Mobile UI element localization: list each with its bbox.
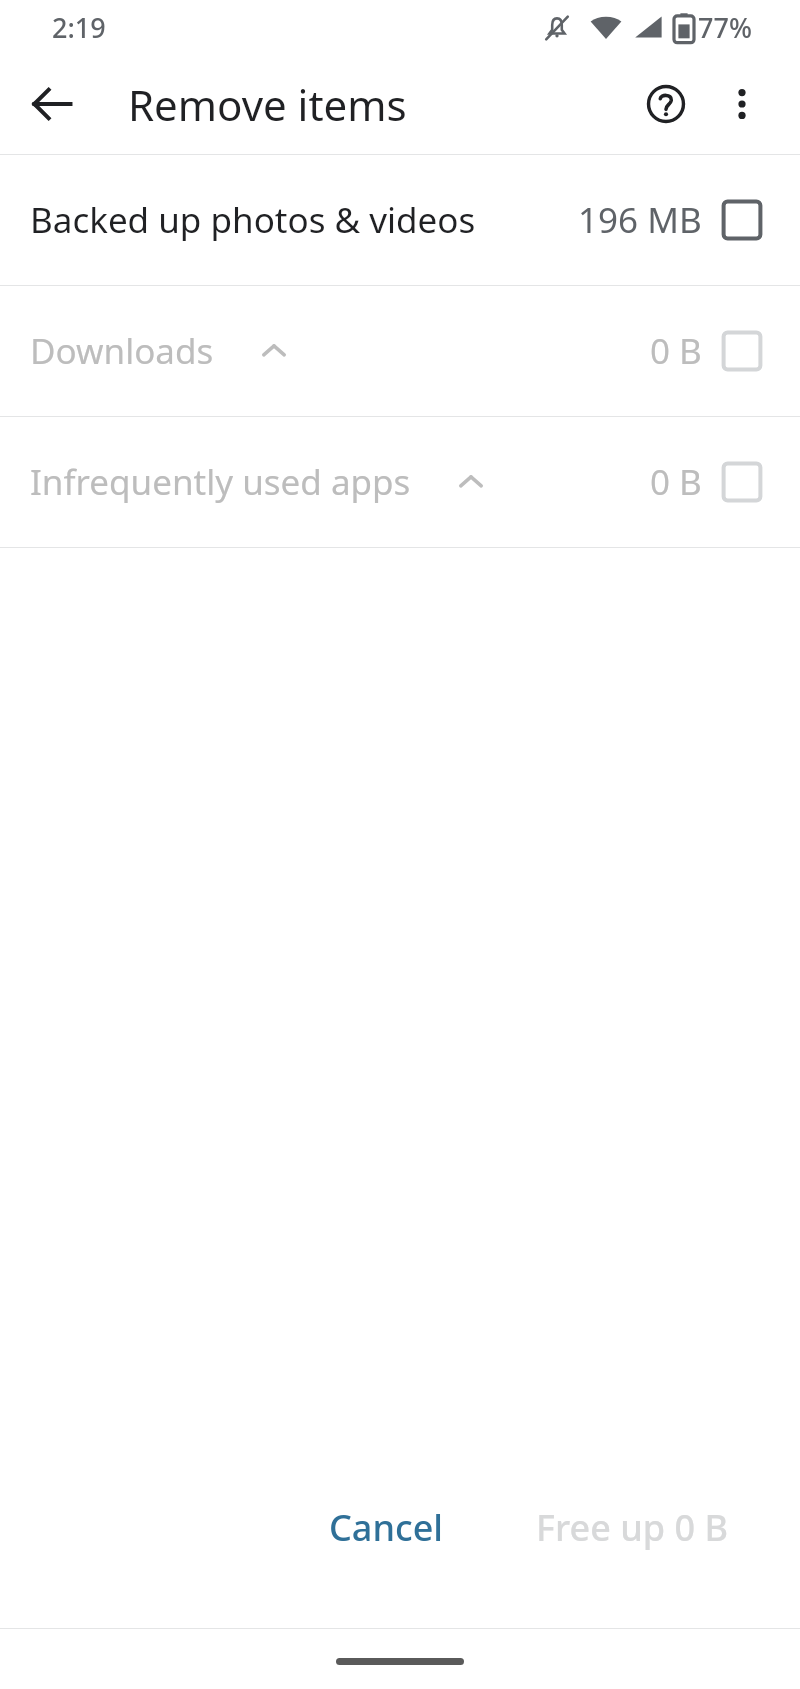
button[interactable]: Infrequently used apps	[0, 417, 800, 547]
staticText: Cancel	[329, 1503, 444, 1552]
staticText: Infrequently used apps	[30, 458, 411, 506]
staticText: 196 MB	[578, 196, 702, 244]
button[interactable]: Downloads	[0, 286, 800, 416]
staticText: 77%	[698, 9, 752, 46]
staticText: Downloads	[30, 327, 214, 375]
staticText: Free up 0 B	[536, 1503, 728, 1552]
staticText: 2:19	[52, 9, 106, 46]
button[interactable]: Help	[628, 66, 704, 142]
button[interactable]: More options	[704, 66, 780, 142]
button[interactable]: Backed up photos & videos	[0, 155, 800, 285]
staticText: Remove items	[128, 76, 407, 133]
staticText: Backed up photos & videos	[30, 196, 476, 244]
button[interactable]: Cancel	[301, 1487, 472, 1568]
staticText: 0 B	[650, 327, 702, 375]
button[interactable]: Free up 0 B	[508, 1487, 756, 1568]
button[interactable]: Back	[16, 68, 88, 140]
staticText: 0 B	[650, 458, 702, 506]
